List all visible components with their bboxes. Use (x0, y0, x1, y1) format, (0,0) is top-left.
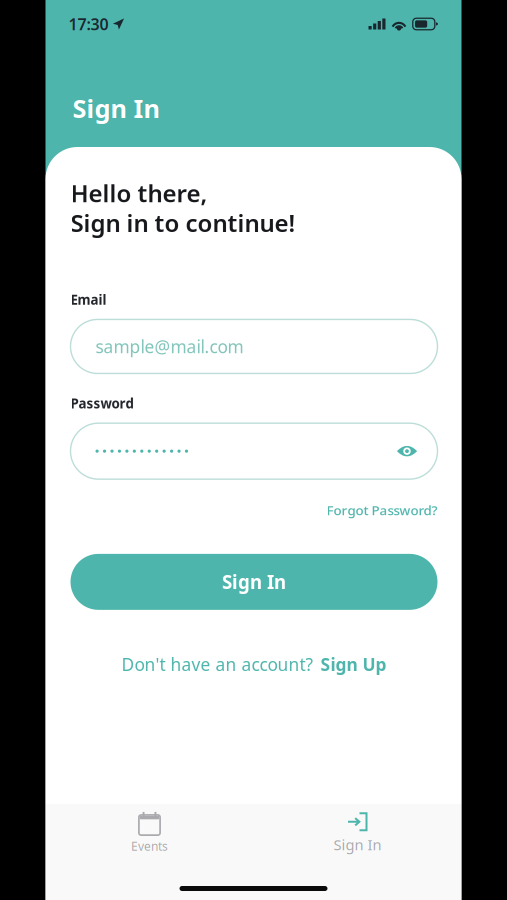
staticText: Sign In (72, 91, 159, 125)
staticText: Forgot Password? (326, 501, 437, 519)
staticText: Don't have an account? (121, 653, 313, 676)
staticText: Sign Up (320, 653, 386, 676)
staticText: 17:30 (68, 13, 108, 35)
staticText: sample@mail.com (95, 335, 243, 358)
staticText: Sign In (333, 835, 381, 854)
staticText: Sign In (222, 569, 286, 594)
button[interactable]: Events (45, 810, 253, 856)
staticText: Hello there, Sign in to continue! (70, 177, 295, 239)
button[interactable]: Sign Up (320, 653, 386, 676)
button[interactable]: Sign In (70, 554, 437, 610)
staticText: Email (70, 291, 106, 308)
staticText: Password (70, 394, 133, 412)
button[interactable]: Forgot Password? (326, 501, 437, 519)
staticText: Events (131, 838, 168, 854)
button[interactable]: Sign In (253, 810, 461, 856)
